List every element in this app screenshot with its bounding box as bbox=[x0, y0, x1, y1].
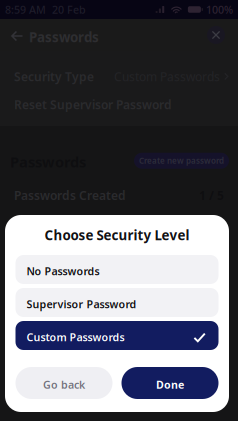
button[interactable]: Reset Supervisor Password bbox=[0, 96, 238, 113]
staticText: Supervisor Password bbox=[26, 297, 136, 311]
staticText: Passwords Created bbox=[14, 187, 126, 203]
button[interactable]: Close bbox=[202, 19, 230, 51]
staticText: Done bbox=[156, 377, 184, 392]
button[interactable]: Custom Passwords bbox=[15, 321, 218, 350]
button[interactable]: Create new password bbox=[134, 153, 229, 169]
button[interactable]: No Passwords bbox=[15, 255, 218, 284]
staticText: Go back bbox=[43, 377, 85, 392]
staticText: 100% bbox=[206, 2, 233, 17]
button[interactable]: Supervisor Password bbox=[15, 288, 218, 317]
staticText: Custom Passwords bbox=[26, 330, 124, 344]
button[interactable]: Back bbox=[8, 19, 26, 51]
staticText: No Passwords bbox=[26, 264, 99, 278]
staticText: Security Type bbox=[14, 68, 94, 84]
staticText: Reset Supervisor Password bbox=[14, 96, 172, 112]
staticText: 8:59 AM 20 Feb bbox=[5, 2, 86, 17]
button[interactable]: Go back bbox=[15, 367, 112, 399]
staticText: Create new password bbox=[139, 155, 224, 166]
staticText: Passwords bbox=[29, 28, 99, 46]
staticText: Custom Passwords bbox=[114, 68, 220, 84]
staticText: Choose Security Level bbox=[44, 226, 189, 244]
button[interactable]: Security Type bbox=[0, 68, 238, 85]
button[interactable]: Done bbox=[121, 367, 218, 399]
